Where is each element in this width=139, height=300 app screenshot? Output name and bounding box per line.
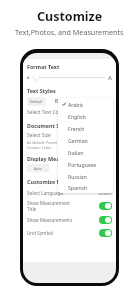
button[interactable]: Auto — [27, 164, 49, 172]
other: Toggle Show Measurements — [99, 216, 112, 224]
staticText: Document Setup — [27, 122, 72, 129]
button[interactable]: Spanish — [58, 182, 113, 193]
staticText: B — [55, 98, 59, 104]
staticText: Italian — [68, 149, 84, 156]
staticText: A4 (default: Preset) — [27, 140, 58, 145]
staticText: Auto — [34, 166, 42, 171]
button[interactable]: Arabic — [58, 98, 113, 110]
staticText: Customize Measurement — [27, 178, 95, 185]
button[interactable]: English — [58, 110, 113, 122]
button[interactable]: U — [81, 96, 97, 106]
staticText: Arabic — [99, 190, 112, 196]
staticText: Text,Photos, and Measurements — [15, 27, 124, 37]
staticText: Display Measurement — [27, 155, 86, 162]
button[interactable]: Show Measurement Title — [23, 198, 116, 213]
button[interactable]: French — [58, 122, 113, 134]
staticText: Text Styles — [27, 87, 56, 94]
button[interactable]: A — [27, 73, 112, 82]
button[interactable]: B — [49, 96, 65, 106]
staticText: Select Text Color — [27, 109, 65, 116]
staticText: Spanish — [68, 184, 88, 191]
staticText: Unit Symbol — [27, 230, 99, 236]
other: Toggle Unit Symbol — [99, 229, 112, 237]
button[interactable]: Russian — [58, 170, 113, 182]
staticText: Russian — [68, 173, 87, 180]
staticText: Select Language — [27, 190, 64, 196]
button[interactable]: I — [65, 96, 81, 106]
other: Toggle Show Measurement Title — [99, 202, 112, 210]
button[interactable]: Select Language — [23, 187, 116, 198]
button[interactable]: Unit Symbol — [23, 226, 116, 239]
staticText: Custom : Letter — [27, 145, 52, 150]
staticText: Select Size — [27, 132, 51, 139]
button[interactable]: Portuguese — [58, 158, 113, 170]
button[interactable]: German — [58, 134, 113, 146]
staticText: A — [27, 75, 30, 80]
staticText: Format Text — [27, 63, 60, 70]
staticText: Show Measurements — [27, 217, 99, 223]
staticText: German — [68, 137, 88, 144]
button[interactable]: Default — [27, 97, 46, 106]
staticText: Portuguese — [68, 161, 97, 168]
staticText: Arabic — [68, 101, 84, 108]
button[interactable]: Italian — [58, 146, 113, 158]
staticText: Show Measurement Title — [27, 200, 99, 212]
staticText: Default — [30, 99, 43, 104]
staticText: French — [68, 125, 85, 132]
staticText: A — [108, 74, 112, 82]
staticText: English — [68, 113, 86, 120]
button[interactable]: Show Measurements — [23, 213, 116, 226]
staticText: Customize — [37, 8, 103, 25]
